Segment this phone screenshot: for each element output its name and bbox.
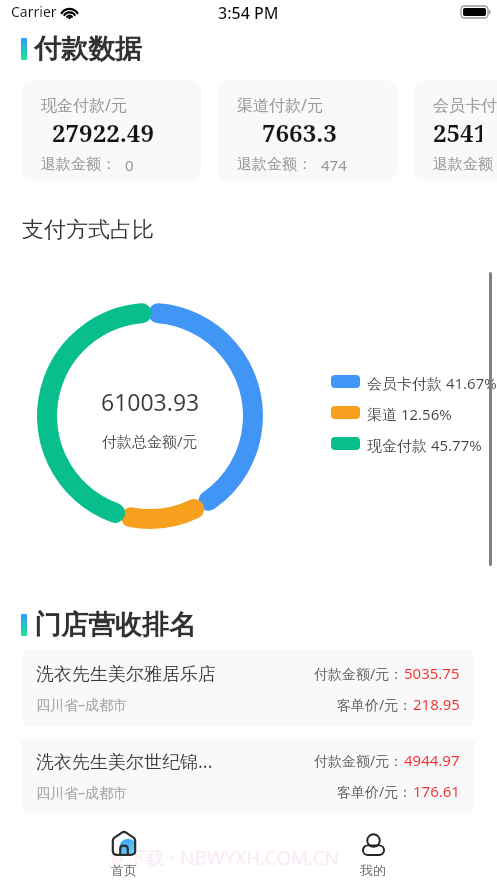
staticText: 付款金额/元： bbox=[314, 664, 404, 683]
staticText: 4944.97 bbox=[404, 750, 460, 770]
staticText: 付款数据 bbox=[34, 32, 142, 66]
button[interactable]: 洗衣先生美尔世纪锦... bbox=[21, 737, 475, 813]
staticText: 61003.93 bbox=[101, 386, 200, 417]
staticText: 474 bbox=[321, 155, 347, 175]
staticText: 会员卡付款 41.67% bbox=[367, 373, 497, 393]
staticText: 门店营收排名 bbox=[34, 608, 196, 642]
staticText: 现金付款 45.77% bbox=[367, 435, 482, 455]
staticText: Carrier bbox=[11, 2, 57, 21]
staticText: 洗衣先生美尔雅居乐店 bbox=[36, 663, 216, 686]
staticText: 付款总金额/元 bbox=[102, 431, 198, 451]
staticText: 退款金额： bbox=[237, 155, 312, 174]
staticText: 渠道 12.56% bbox=[367, 404, 452, 424]
staticText: 现金付款/元 bbox=[41, 94, 127, 116]
staticText: 退款金额： bbox=[41, 155, 116, 174]
staticText: 3:54 PM bbox=[218, 2, 279, 24]
staticText: 27922.49 bbox=[52, 116, 154, 149]
button[interactable]: 会员卡付款/元 bbox=[413, 80, 497, 181]
other: 首页 bbox=[111, 831, 137, 856]
staticText: 洗衣先生美尔世纪锦... bbox=[36, 749, 213, 774]
staticText: 四川省–成都市 bbox=[36, 695, 127, 714]
staticText: 我的 bbox=[360, 862, 386, 878]
staticText: 会员卡付款/元 bbox=[433, 94, 497, 116]
staticText: 退款金额： bbox=[433, 155, 497, 174]
staticText: 5035.75 bbox=[404, 663, 460, 683]
staticText: 0 bbox=[125, 155, 134, 175]
button[interactable]: 洗衣先生美尔雅居乐店 bbox=[21, 650, 475, 726]
staticText: 客单价/元： bbox=[337, 695, 413, 714]
staticText: 首页 bbox=[111, 862, 137, 878]
button[interactable]: 现金付款/元 bbox=[21, 80, 201, 181]
staticText: 渠道付款/元 bbox=[237, 94, 323, 116]
staticText: 意下载 · NBWYXH.COM.CN bbox=[108, 845, 339, 871]
button[interactable]: 我的 bbox=[360, 813, 386, 878]
staticText: 7663.3 bbox=[262, 116, 337, 149]
button[interactable]: 首页 bbox=[111, 813, 137, 878]
staticText: 支付方式占比 bbox=[22, 216, 154, 244]
staticText: 218.95 bbox=[413, 694, 460, 714]
staticText: 25417.6 bbox=[433, 116, 482, 149]
other: 我的 bbox=[362, 831, 385, 856]
staticText: 付款金额/元： bbox=[314, 751, 404, 770]
staticText: 客单价/元： bbox=[337, 782, 413, 801]
staticText: 176.61 bbox=[413, 781, 460, 801]
button[interactable]: 渠道付款/元 bbox=[217, 80, 397, 181]
staticText: 四川省–成都市 bbox=[36, 783, 127, 802]
